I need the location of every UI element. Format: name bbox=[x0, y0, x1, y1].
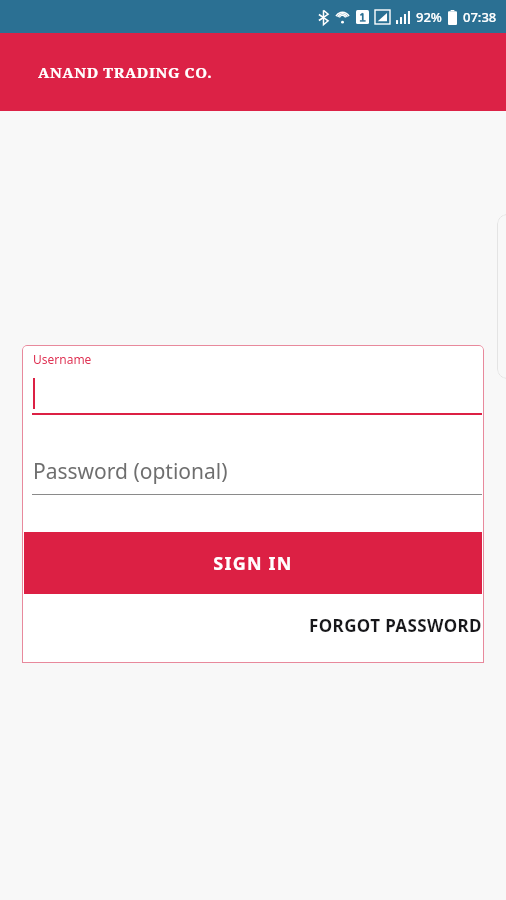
staticText: SIGN IN bbox=[213, 551, 293, 576]
button[interactable]: SIGN IN bbox=[24, 532, 482, 594]
button[interactable]: FORGOT PASSWORD bbox=[222, 600, 482, 650]
staticText: 07:38 bbox=[463, 8, 497, 26]
staticText: 92% bbox=[416, 8, 442, 26]
button[interactable]: Username field bbox=[23, 346, 483, 416]
staticText: FORGOT PASSWORD bbox=[309, 614, 482, 637]
staticText: ANAND TRADING CO. bbox=[38, 62, 213, 82]
staticText: Username bbox=[33, 351, 92, 367]
button[interactable]: Password field bbox=[23, 445, 483, 497]
staticText: Password (optional) bbox=[33, 457, 228, 486]
